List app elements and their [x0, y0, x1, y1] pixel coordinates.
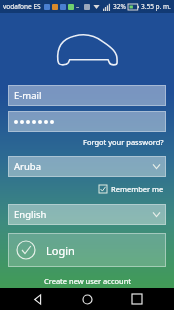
button[interactable]: Home — [74, 288, 100, 310]
staticText: vodafone ES — [3, 2, 41, 11]
staticText: Create new user account — [44, 276, 131, 286]
button[interactable]: Forgot your password? — [8, 136, 166, 148]
staticText: E-mail — [14, 89, 42, 102]
button[interactable]: Recents — [124, 288, 150, 310]
button[interactable]: English — [8, 204, 166, 225]
staticText: 3.55 p. m. — [141, 2, 171, 11]
staticText: Remember me — [111, 184, 164, 194]
button[interactable] — [8, 111, 166, 132]
staticText: – — [76, 2, 80, 11]
button[interactable]: Aruba — [8, 156, 166, 177]
button[interactable]: Create new user account — [8, 274, 166, 288]
staticText: Forgot your password? — [83, 137, 164, 147]
button[interactable]: Back — [24, 288, 50, 310]
staticText: Login — [46, 243, 75, 258]
staticText: English — [14, 208, 47, 221]
button[interactable]: E-mail — [8, 85, 166, 106]
staticText: Aruba — [14, 160, 42, 173]
staticText: 32% — [113, 2, 126, 11]
button[interactable]: Login — [8, 233, 166, 267]
button[interactable]: Remember me — [97, 182, 166, 196]
